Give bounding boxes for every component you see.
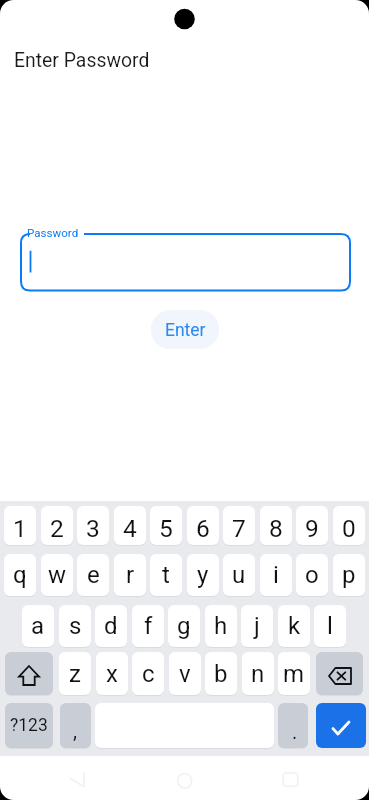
other: Shift <box>19 666 39 685</box>
staticText: 4 <box>123 514 137 543</box>
staticText: l <box>327 612 333 640</box>
staticText: j <box>254 612 260 640</box>
button[interactable]: , <box>60 703 91 748</box>
staticText: k <box>288 612 301 640</box>
button[interactable]: Enter <box>151 310 219 348</box>
staticText: n <box>251 660 265 688</box>
button[interactable]: o <box>296 554 328 596</box>
button[interactable]: 6 <box>187 506 219 545</box>
button[interactable]: w <box>41 554 73 596</box>
button[interactable]: c <box>132 652 164 695</box>
button[interactable]: e <box>77 554 109 596</box>
button[interactable]: f <box>132 605 164 647</box>
staticText: d <box>104 612 118 640</box>
staticText: ?123 <box>10 715 48 736</box>
button[interactable]: Backspace <box>316 652 363 695</box>
staticText: h <box>214 612 228 640</box>
button[interactable]: x <box>96 652 128 695</box>
button[interactable]: 9 <box>296 506 328 545</box>
staticText: g <box>177 612 191 640</box>
staticText: Password <box>27 226 79 240</box>
button[interactable]: . <box>278 703 308 748</box>
button[interactable]: l <box>314 605 346 647</box>
staticText: 0 <box>342 514 356 543</box>
staticText: 6 <box>196 514 210 543</box>
other: Backspace <box>329 668 351 684</box>
button[interactable]: 3 <box>77 506 109 545</box>
staticText: Enter Password <box>14 49 150 72</box>
staticText: x <box>106 660 118 688</box>
button[interactable]: 8 <box>260 506 292 545</box>
staticText: q <box>13 561 27 589</box>
staticText: 1 <box>13 514 27 543</box>
staticText: y <box>197 561 209 589</box>
button[interactable]: p <box>333 554 365 596</box>
button[interactable]: 7 <box>223 506 255 545</box>
button[interactable]: m <box>278 652 310 695</box>
button[interactable]: u <box>223 554 255 596</box>
button[interactable]: b <box>205 652 237 695</box>
button[interactable]: a <box>22 605 54 647</box>
staticText: 5 <box>159 514 173 543</box>
staticText: b <box>214 660 228 688</box>
staticText: r <box>126 561 135 589</box>
staticText: , <box>73 719 77 742</box>
staticText: z <box>69 660 81 688</box>
button[interactable]: q <box>4 554 36 596</box>
button[interactable]: v <box>169 652 201 695</box>
staticText: 9 <box>305 514 319 543</box>
button[interactable]: k <box>278 605 310 647</box>
button[interactable]: 2 <box>41 506 73 545</box>
staticText: Enter <box>165 320 206 341</box>
button[interactable]: d <box>95 605 127 647</box>
staticText: c <box>142 660 155 688</box>
button[interactable]: r <box>114 554 146 596</box>
button[interactable]: Password <box>21 227 351 291</box>
button[interactable]: ?123 <box>5 703 53 748</box>
button[interactable]: i <box>260 554 292 596</box>
button[interactable]: z <box>59 652 91 695</box>
button[interactable]: j <box>241 605 273 647</box>
staticText: s <box>69 612 82 640</box>
button[interactable]: 4 <box>114 506 146 545</box>
staticText: a <box>31 612 45 640</box>
staticText: 7 <box>232 514 246 543</box>
button[interactable]: Shift <box>5 652 53 695</box>
staticText: m <box>283 660 305 688</box>
button[interactable]: g <box>168 605 200 647</box>
staticText: 3 <box>86 514 100 543</box>
staticText: f <box>144 612 153 640</box>
staticText: 2 <box>50 514 64 543</box>
staticText: i <box>273 561 279 589</box>
button[interactable]: h <box>205 605 237 647</box>
button[interactable]: 5 <box>150 506 182 545</box>
staticText: t <box>162 561 170 589</box>
button[interactable]: Enter <box>316 703 366 748</box>
button[interactable]: 0 <box>333 506 365 545</box>
button[interactable]: y <box>187 554 219 596</box>
staticText: p <box>342 561 356 589</box>
staticText: . <box>292 720 298 743</box>
button[interactable]: t <box>150 554 182 596</box>
button[interactable]: s <box>59 605 91 647</box>
staticText: o <box>305 561 319 589</box>
staticText: v <box>179 660 191 688</box>
button[interactable]: n <box>242 652 274 695</box>
staticText: u <box>232 561 246 589</box>
staticText: 8 <box>269 514 283 543</box>
staticText: w <box>48 561 67 589</box>
staticText: e <box>87 561 100 589</box>
button[interactable]: 1 <box>4 506 36 545</box>
